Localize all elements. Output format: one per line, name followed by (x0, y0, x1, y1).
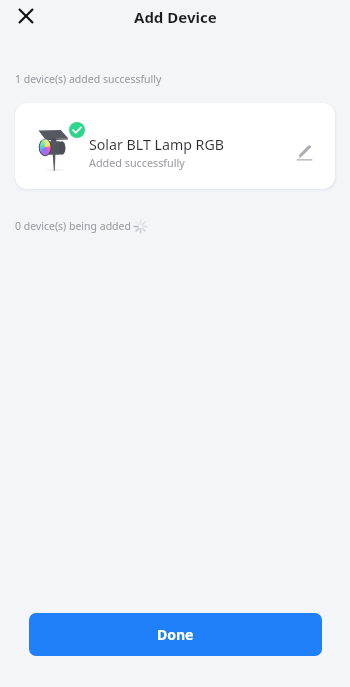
button[interactable]: Edit (289, 137, 319, 167)
button[interactable]: Solar BLT Lamp RGB (15, 103, 335, 189)
staticText: 0 device(s) being added (15, 219, 131, 233)
button[interactable]: Done (29, 613, 322, 656)
staticText: Done (157, 625, 194, 644)
staticText: Added successfully (89, 155, 185, 170)
button[interactable]: Close (8, 0, 43, 33)
staticText: Solar BLT Lamp RGB (89, 135, 224, 154)
staticText: 1 device(s) added successfully (15, 72, 162, 86)
staticText: Add Device (134, 7, 217, 27)
